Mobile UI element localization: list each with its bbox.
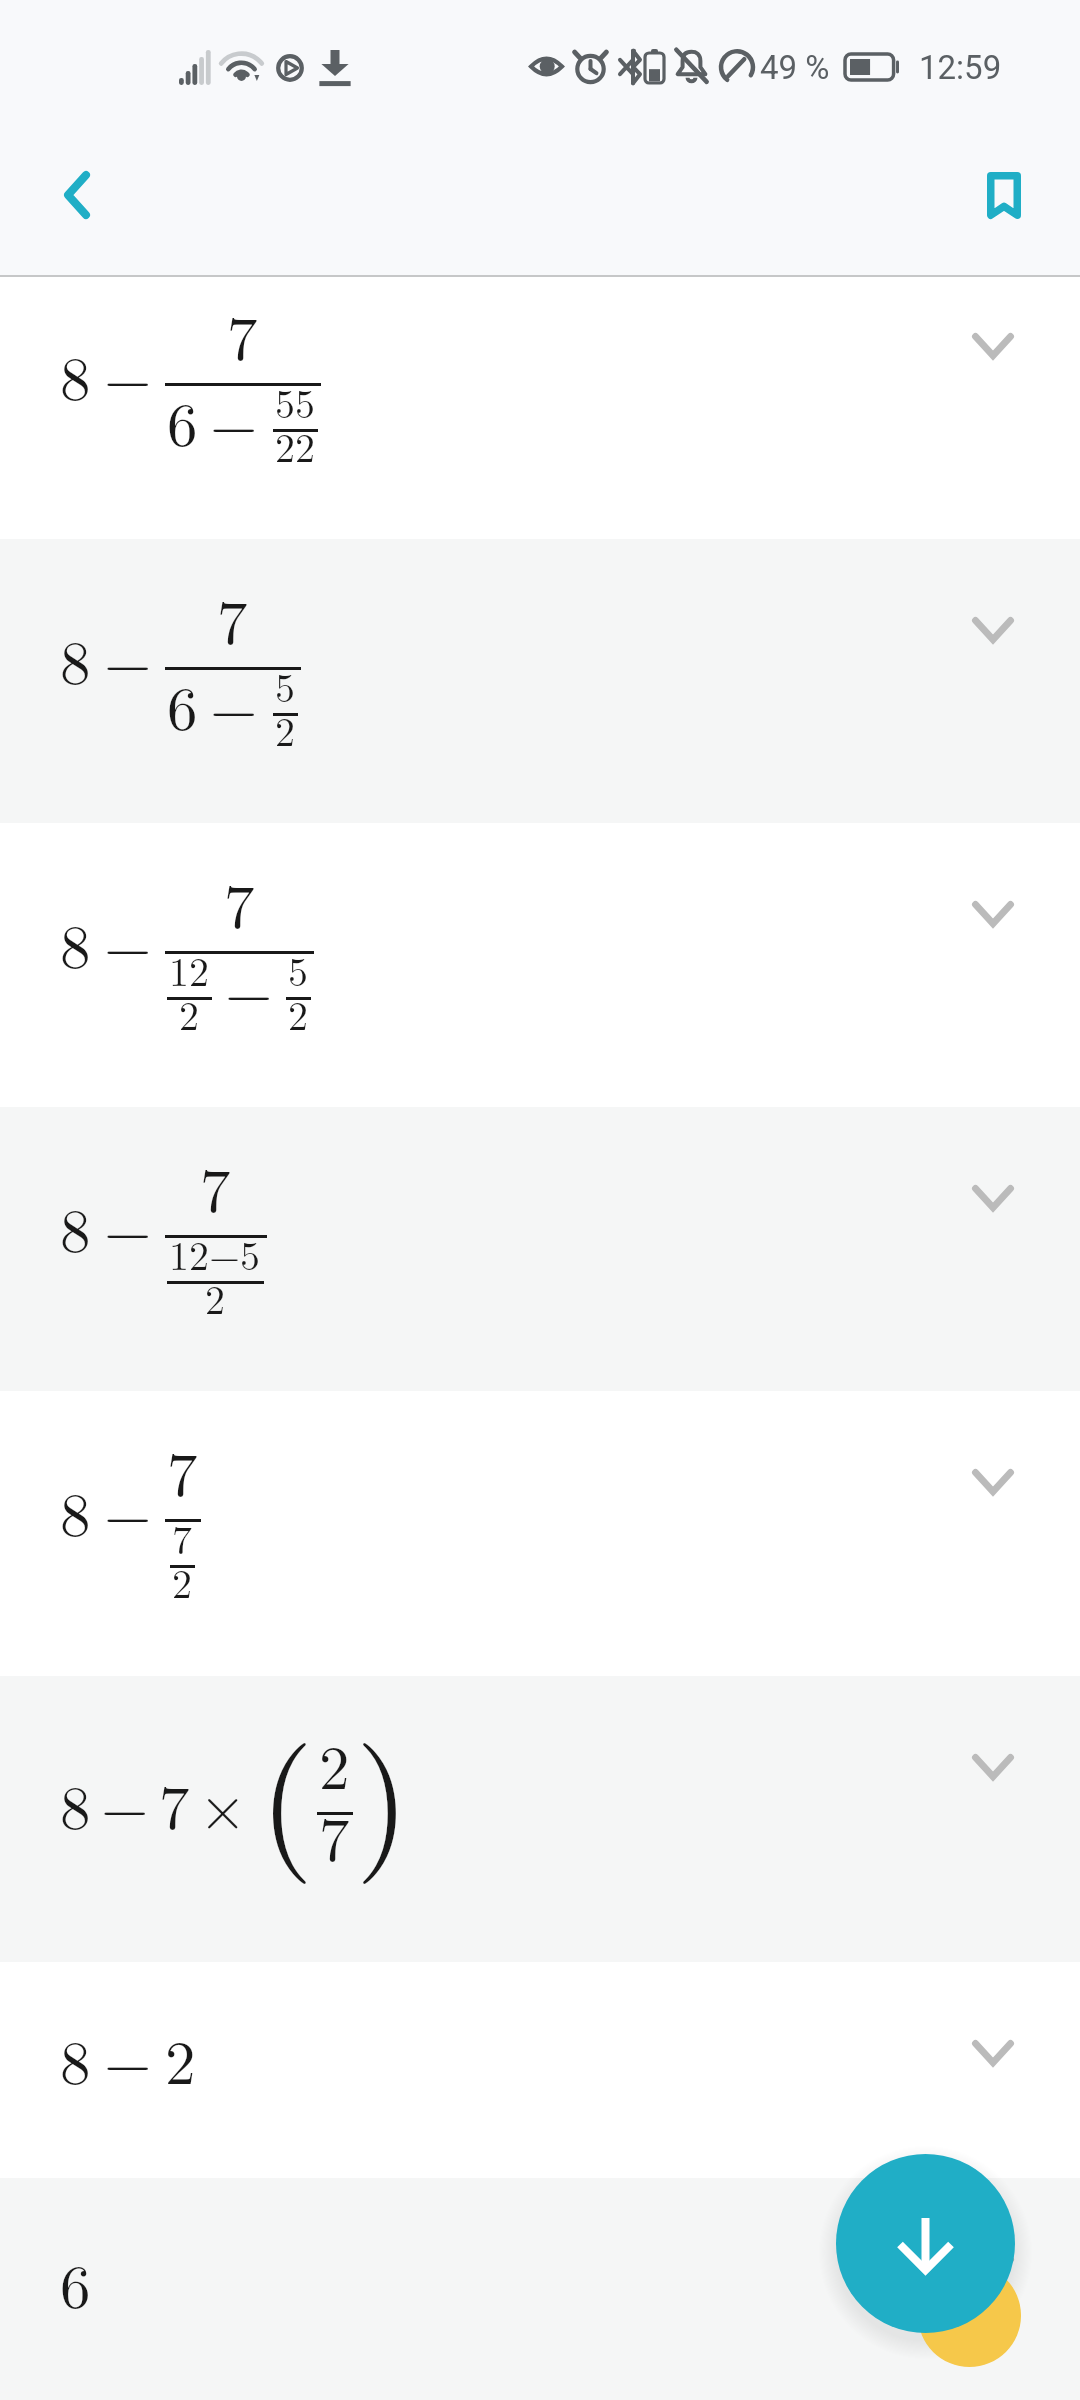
button[interactable]: Expand step — [953, 884, 1033, 944]
button[interactable]: 8 — [0, 1676, 1080, 1962]
button[interactable]: Scroll to bottom — [836, 2154, 1015, 2333]
staticText: 7 — [227, 291, 258, 377]
staticText: 5 — [288, 941, 308, 998]
staticText: − — [104, 615, 152, 701]
staticText: − — [104, 2015, 152, 2101]
staticText: 2 — [205, 1269, 225, 1326]
button[interactable]: Expand step — [953, 316, 1033, 376]
button[interactable]: 8 — [0, 1962, 1080, 2178]
button[interactable]: Expand step — [953, 1737, 1033, 1797]
staticText: 12:59 — [919, 48, 1002, 87]
button[interactable]: 8 — [0, 539, 1080, 823]
staticText: − — [104, 1183, 152, 1269]
staticText: − — [104, 1467, 152, 1553]
button[interactable]: 8 — [0, 823, 1080, 1107]
button[interactable]: 6 — [0, 2178, 1080, 2400]
staticText: 7 — [200, 1143, 231, 1229]
staticText: − — [210, 377, 258, 463]
staticText: 49 % — [760, 48, 830, 87]
staticText: 55 — [275, 373, 315, 430]
staticText: 2 — [319, 1720, 350, 1806]
button[interactable]: 8 — [0, 1107, 1080, 1391]
staticText: 2 — [179, 985, 199, 1042]
staticText: 8 — [60, 899, 91, 985]
staticText: 8 — [60, 1183, 91, 1269]
staticText: 8 — [60, 331, 91, 417]
button[interactable]: 8 — [0, 1391, 1080, 1676]
staticText: 7 — [172, 1509, 192, 1566]
staticText: 8 — [60, 2015, 91, 2101]
staticText: ) — [355, 1690, 411, 1891]
staticText: × — [199, 1760, 247, 1846]
staticText: 2 — [165, 2015, 196, 2101]
staticText: 2 — [288, 985, 308, 1042]
staticText: ( — [259, 1690, 315, 1891]
staticText: 12 — [169, 941, 209, 998]
staticText: 6 — [60, 2239, 91, 2325]
staticText: 22 — [275, 417, 315, 474]
staticText: 12−5 — [169, 1225, 261, 1282]
staticText: − — [104, 331, 152, 417]
staticText: 2 — [275, 701, 295, 758]
staticText: 2 — [172, 1553, 192, 1610]
staticText: 5 — [275, 657, 295, 714]
staticText: 6 — [167, 377, 198, 463]
button[interactable]: Expand step — [953, 1452, 1033, 1512]
staticText: 8 — [60, 615, 91, 701]
staticText: 7 — [159, 1760, 190, 1846]
staticText: 7 — [224, 859, 255, 945]
staticText: − — [104, 899, 152, 985]
staticText: 8 — [60, 1467, 91, 1553]
button[interactable]: Back — [36, 154, 118, 236]
staticText: − — [225, 945, 273, 1031]
staticText: − — [101, 1760, 149, 1846]
staticText: 7 — [167, 1427, 198, 1513]
button[interactable]: Expand step — [953, 600, 1033, 660]
staticText: 8 — [60, 1760, 91, 1846]
button[interactable]: 8 — [0, 274, 1080, 539]
staticText: 7 — [319, 1792, 350, 1878]
staticText: 6 — [167, 661, 198, 747]
button[interactable]: Expand step — [953, 2239, 1033, 2299]
button[interactable]: Expand step — [953, 1168, 1033, 1228]
button[interactable]: Bookmark — [963, 154, 1045, 236]
staticText: − — [210, 661, 258, 747]
staticText: 7 — [217, 575, 248, 661]
button[interactable]: Expand step — [953, 2023, 1033, 2083]
